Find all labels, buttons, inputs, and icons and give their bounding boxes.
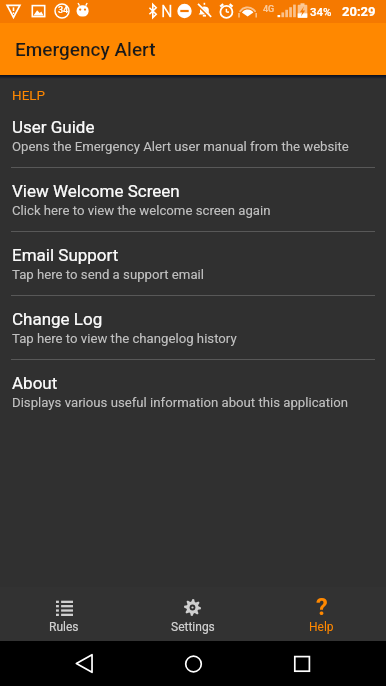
staticText: 20:29	[342, 4, 376, 19]
staticText: ?	[316, 593, 328, 616]
staticText: User Guide	[12, 117, 95, 137]
button[interactable]: View Welcome Screen	[0, 168, 386, 231]
button[interactable]: ?	[257, 587, 386, 634]
other: System navigation	[0, 641, 386, 686]
button[interactable]: User Guide	[0, 104, 386, 167]
button[interactable]: About	[0, 360, 386, 423]
staticText: Displays various useful information abou…	[12, 395, 349, 410]
staticText: Help	[309, 620, 334, 634]
staticText: Settings	[171, 620, 215, 634]
staticText: 4G	[263, 4, 275, 15]
staticText: Emergency Alert	[15, 38, 156, 60]
button[interactable]: Change Log	[0, 296, 386, 359]
staticText: View Welcome Screen	[12, 181, 180, 201]
staticText: Email Support	[12, 245, 119, 265]
staticText: Tap here to send a support email	[12, 267, 204, 282]
staticText: Click here to view the welcome screen ag…	[12, 203, 271, 218]
button[interactable]: Email Support	[0, 232, 386, 295]
button[interactable]: Rules	[0, 587, 128, 634]
staticText: 34	[58, 5, 69, 16]
staticText: Opens the Emergency Alert user manual fr…	[12, 139, 349, 154]
button[interactable]: Settings	[128, 587, 257, 634]
staticText: About	[12, 373, 58, 393]
staticText: Change Log	[12, 309, 103, 329]
staticText: 34%	[310, 5, 332, 18]
staticText: Rules	[49, 620, 79, 634]
staticText: Tap here to view the changelog history	[12, 331, 237, 346]
staticText: HELP	[12, 87, 46, 103]
